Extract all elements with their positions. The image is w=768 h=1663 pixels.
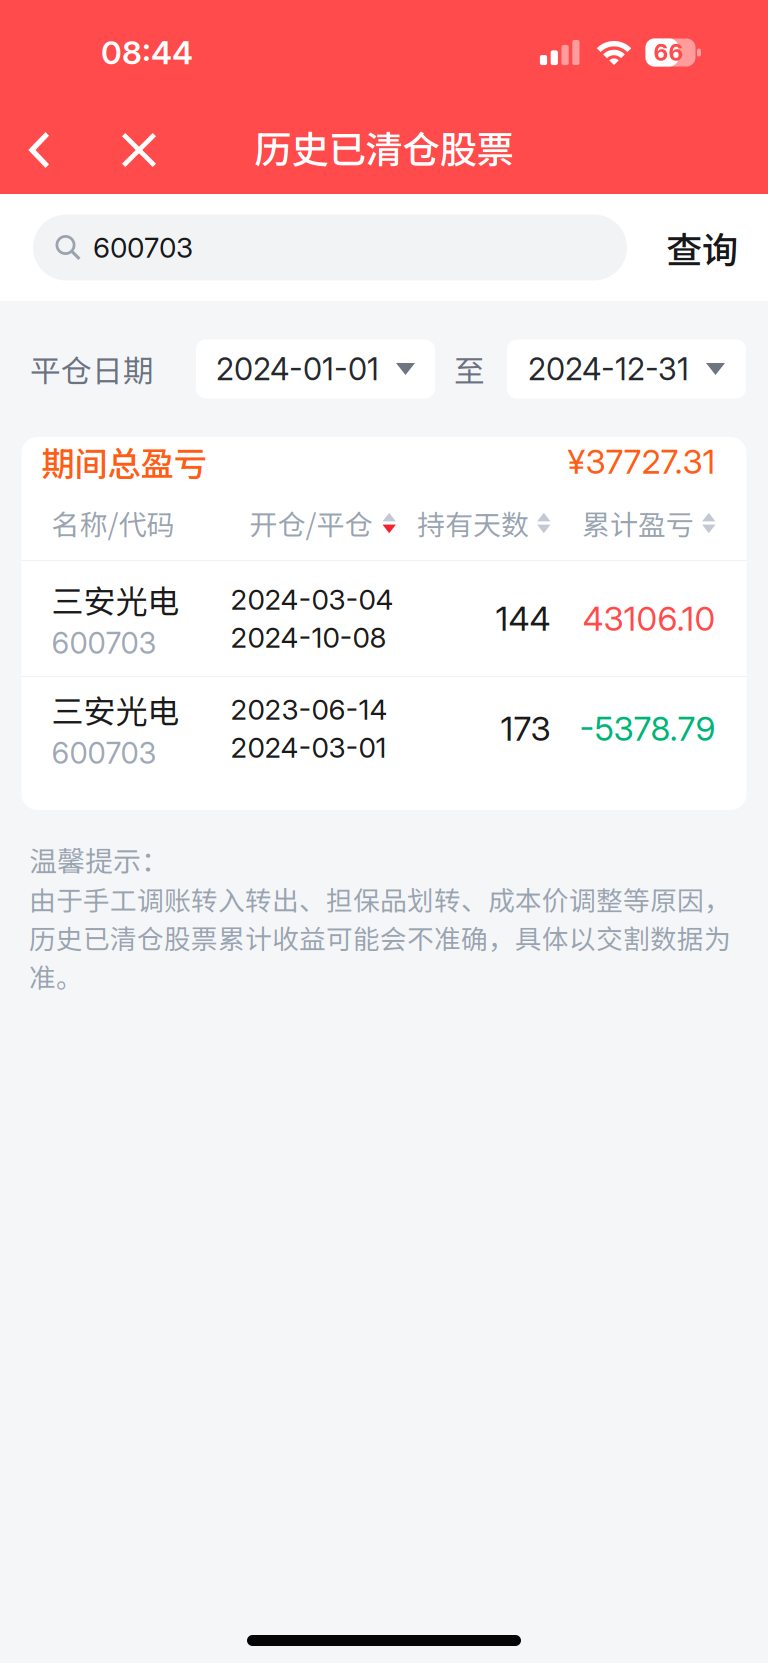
staticText: 43106.10 [582, 598, 715, 639]
staticText: ¥37727.31 [567, 441, 715, 482]
staticText: 2024-10-08 [230, 620, 386, 654]
button[interactable]: 三安光电 [21, 677, 746, 780]
staticText: 历史已清仓股票 [254, 120, 513, 174]
staticText: 开仓/平仓 [249, 503, 372, 543]
staticText: 600703 [93, 231, 193, 264]
staticText: 累计盈亏 [582, 503, 694, 543]
button[interactable]: 返回 [0, 100, 76, 200]
staticText: 查询 [666, 221, 738, 273]
staticText: 至 [454, 347, 485, 391]
staticText: 持有天数 [417, 503, 529, 543]
button[interactable]: 2024-01-01 [196, 339, 435, 398]
staticText: 2023-06-14 [230, 693, 387, 726]
staticText: 三安光电 [51, 686, 179, 732]
button[interactable]: 2024-12-31 [507, 339, 746, 398]
staticText: 2024-12-31 [528, 350, 689, 387]
staticText: 2024-03-01 [230, 730, 386, 764]
staticText: 2024-01-01 [216, 350, 379, 387]
staticText: 三安光电 [51, 576, 179, 622]
staticText: 66 [653, 39, 683, 66]
staticText: 600703 [51, 625, 156, 661]
staticText: 温馨提示： [29, 839, 169, 879]
staticText: 名称/代码 [51, 503, 174, 543]
staticText: -5378.79 [579, 708, 715, 749]
staticText: 144 [495, 598, 550, 639]
staticText: 08:44 [101, 33, 193, 72]
staticText: 600703 [51, 735, 156, 771]
staticText: 平仓日期 [30, 347, 154, 391]
staticText: 173 [500, 708, 550, 749]
staticText: 期间总盈亏 [41, 437, 206, 486]
staticText: 由于手工调账转入转出、担保品划转、成本价调整等原因，历史已清仓股票累计收益可能会… [29, 879, 731, 995]
button[interactable]: 查询 [662, 214, 742, 280]
staticText: 2024-03-04 [230, 583, 393, 616]
button[interactable]: 关闭 [76, 100, 202, 200]
button[interactable]: 三安光电 [21, 561, 746, 676]
